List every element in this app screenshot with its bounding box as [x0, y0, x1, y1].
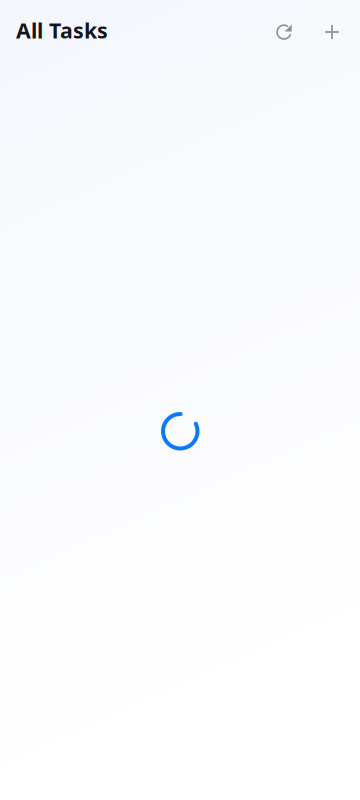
staticText: All Tasks — [16, 16, 108, 44]
button[interactable]: Refresh — [262, 10, 306, 54]
button[interactable]: Add task — [310, 10, 354, 54]
